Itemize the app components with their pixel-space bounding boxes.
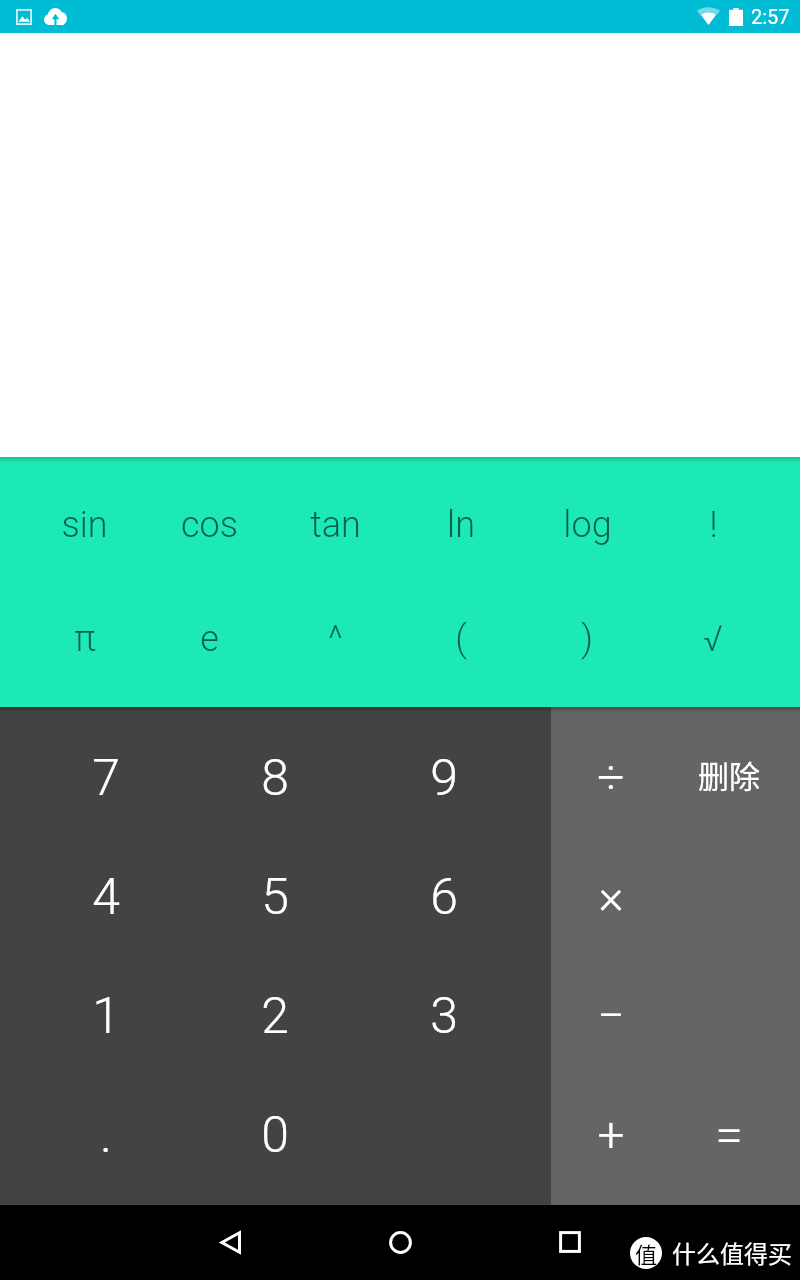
staticText: tan bbox=[310, 504, 361, 546]
staticText: π bbox=[74, 618, 96, 660]
staticText: − bbox=[597, 987, 625, 1043]
staticText: 值 bbox=[635, 1237, 658, 1269]
staticText: × bbox=[598, 868, 624, 924]
staticText: 3 bbox=[430, 987, 458, 1046]
staticText: 4 bbox=[92, 868, 120, 927]
button[interactable]: 5 bbox=[190, 838, 359, 957]
button[interactable]: ^ bbox=[272, 582, 398, 696]
button[interactable]: ln bbox=[398, 468, 524, 582]
button[interactable]: Back bbox=[207, 1219, 253, 1265]
staticText: 0 bbox=[261, 1106, 289, 1165]
staticText: 8 bbox=[261, 749, 289, 808]
button[interactable]: sin bbox=[22, 468, 147, 582]
staticText: cos bbox=[181, 504, 238, 546]
staticText: ÷ bbox=[597, 749, 625, 805]
staticText: √ bbox=[703, 618, 723, 660]
button[interactable]: − bbox=[552, 955, 670, 1074]
staticText: ^ bbox=[328, 618, 343, 660]
button[interactable]: Home bbox=[377, 1219, 423, 1265]
button[interactable]: × bbox=[552, 836, 670, 955]
button[interactable]: π bbox=[22, 582, 147, 696]
staticText: 1 bbox=[92, 987, 120, 1046]
staticText: 什么值得买 bbox=[672, 1235, 792, 1270]
staticText: ) bbox=[581, 618, 593, 660]
button[interactable]: 8 bbox=[190, 719, 359, 838]
staticText: 2:57 bbox=[751, 5, 790, 28]
button[interactable]: √ bbox=[650, 582, 776, 696]
button[interactable]: 2 bbox=[190, 957, 359, 1076]
button[interactable]: Recent apps bbox=[547, 1219, 593, 1265]
button[interactable]: ! bbox=[650, 468, 776, 582]
button[interactable]: ) bbox=[524, 582, 650, 696]
button[interactable]: 删除 bbox=[670, 717, 788, 836]
button[interactable]: 1 bbox=[21, 957, 190, 1076]
staticText: ! bbox=[709, 504, 718, 546]
button[interactable]: log bbox=[524, 468, 650, 582]
staticText: + bbox=[597, 1106, 625, 1162]
staticText: 2 bbox=[261, 987, 289, 1046]
button[interactable]: = bbox=[670, 1074, 788, 1193]
staticText: 7 bbox=[92, 749, 120, 808]
staticText: ( bbox=[455, 618, 467, 660]
staticText: ln bbox=[447, 504, 475, 546]
staticText: = bbox=[715, 1106, 743, 1165]
button[interactable]: tan bbox=[272, 468, 398, 582]
button[interactable]: 6 bbox=[359, 838, 528, 957]
button[interactable]: e bbox=[147, 582, 272, 696]
staticText: log bbox=[563, 504, 612, 546]
button[interactable]: 9 bbox=[359, 719, 528, 838]
staticText: 5 bbox=[261, 868, 289, 927]
button[interactable]: . bbox=[21, 1076, 190, 1195]
button[interactable]: + bbox=[552, 1074, 670, 1193]
button[interactable]: 7 bbox=[21, 719, 190, 838]
staticText: 6 bbox=[430, 868, 458, 927]
staticText: e bbox=[200, 618, 219, 660]
staticText: . bbox=[100, 1106, 112, 1165]
button[interactable]: 4 bbox=[21, 838, 190, 957]
button[interactable]: 0 bbox=[190, 1076, 359, 1195]
button[interactable]: 3 bbox=[359, 957, 528, 1076]
staticText: sin bbox=[61, 504, 108, 546]
staticText: 删除 bbox=[698, 752, 760, 797]
button[interactable]: ( bbox=[398, 582, 524, 696]
staticText: 9 bbox=[430, 749, 458, 808]
button[interactable]: cos bbox=[147, 468, 272, 582]
button[interactable]: ÷ bbox=[552, 717, 670, 836]
